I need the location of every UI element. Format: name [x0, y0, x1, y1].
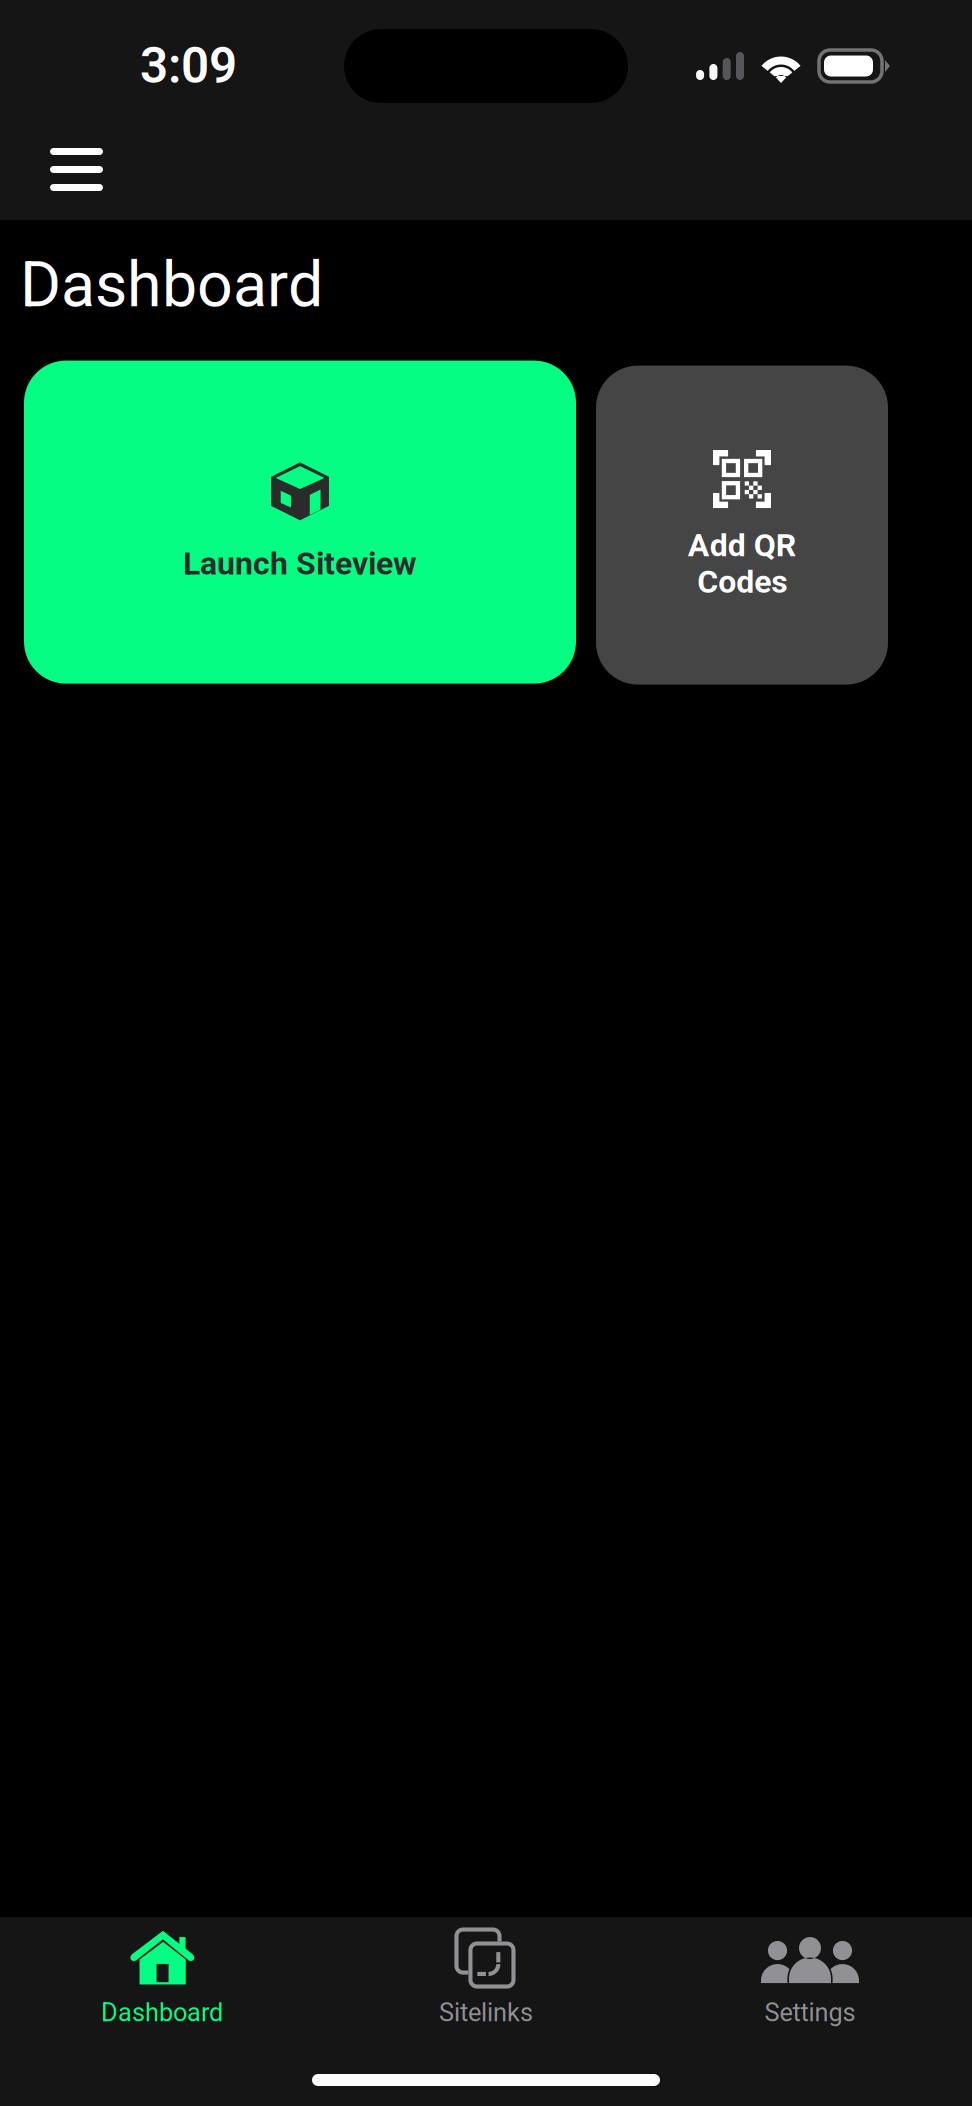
- staticText: Launch Siteview: [183, 545, 417, 582]
- staticText: Settings: [764, 1998, 855, 2027]
- button[interactable]: Menu: [0, 132, 133, 220]
- button[interactable]: Add QR Codes: [596, 361, 888, 685]
- button[interactable]: Settings: [648, 1917, 972, 2027]
- button[interactable]: Sitelinks: [324, 1917, 648, 2027]
- button[interactable]: Dashboard: [0, 1917, 324, 2027]
- button[interactable]: Launch Siteview: [24, 361, 576, 684]
- staticText: Dashboard: [20, 249, 323, 321]
- staticText: Dashboard: [101, 1998, 223, 2027]
- staticText: Sitelinks: [439, 1998, 533, 2027]
- staticText: Add QR Codes: [687, 527, 796, 600]
- staticText: 3:09: [140, 38, 237, 94]
